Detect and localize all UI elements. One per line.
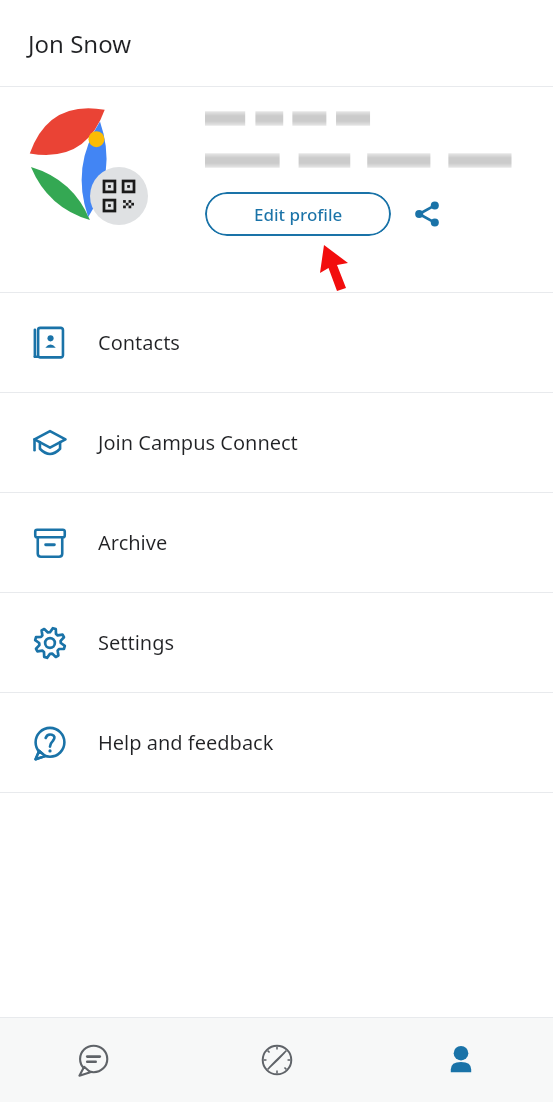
button[interactable]: Explore bbox=[185, 1018, 369, 1102]
staticText: Edit profile bbox=[254, 203, 343, 226]
button[interactable]: Chats bbox=[0, 1018, 185, 1102]
staticText: Join Campus Connect bbox=[98, 429, 298, 456]
button[interactable]: Settings bbox=[0, 593, 553, 692]
button[interactable]: QR code bbox=[90, 167, 148, 225]
button[interactable]: Contacts bbox=[0, 293, 553, 392]
staticText: Contacts bbox=[98, 329, 180, 356]
staticText: Jon Snow bbox=[28, 27, 132, 60]
button[interactable]: Edit profile bbox=[205, 192, 391, 236]
button[interactable]: Archive bbox=[0, 493, 553, 592]
button[interactable]: Join Campus Connect bbox=[0, 393, 553, 492]
staticText: Help and feedback bbox=[98, 729, 274, 756]
staticText: Archive bbox=[98, 529, 168, 556]
button[interactable]: Profile bbox=[369, 1018, 553, 1102]
button[interactable]: Share bbox=[405, 192, 449, 236]
staticText: Settings bbox=[98, 629, 175, 656]
button[interactable]: Help and feedback bbox=[0, 693, 553, 792]
